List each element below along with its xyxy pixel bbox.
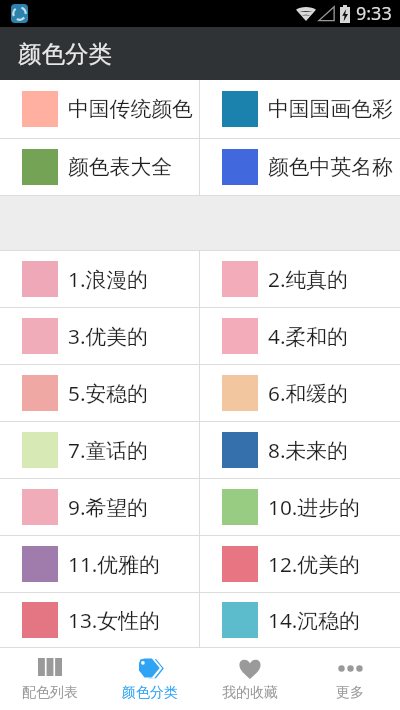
staticText: 4.柔和的 bbox=[268, 322, 348, 350]
staticText: 13.女性的 bbox=[68, 606, 160, 634]
button[interactable]: 颜色中英名称 bbox=[200, 139, 400, 195]
staticText: 颜色分类 bbox=[122, 684, 178, 702]
staticText: 6.和缓的 bbox=[268, 379, 348, 407]
staticText: 7.童话的 bbox=[68, 436, 148, 464]
staticText: 中国传统颜色 bbox=[68, 96, 193, 122]
button[interactable]: 中国传统颜色 bbox=[0, 80, 199, 138]
staticText: 3.优美的 bbox=[68, 322, 148, 350]
button[interactable]: 7.童话的 bbox=[0, 422, 199, 478]
staticText: 更多 bbox=[336, 684, 364, 702]
button[interactable]: 6.和缓的 bbox=[200, 365, 400, 421]
staticText: 颜色中英名称 bbox=[268, 154, 393, 180]
staticText: 颜色表大全 bbox=[68, 154, 172, 180]
staticText: 1.浪漫的 bbox=[68, 265, 148, 293]
button[interactable]: 颜色分类 bbox=[100, 648, 200, 710]
button[interactable]: 3.优美的 bbox=[0, 308, 199, 364]
button[interactable]: 我的收藏 bbox=[200, 648, 300, 710]
button[interactable]: 12.优美的 bbox=[200, 536, 400, 592]
button[interactable]: 11.优雅的 bbox=[0, 536, 199, 592]
staticText: 颜色分类 bbox=[18, 39, 112, 69]
button[interactable]: 8.未来的 bbox=[200, 422, 400, 478]
button[interactable]: 更多 bbox=[300, 648, 400, 710]
button[interactable]: 14.沉稳的 bbox=[200, 593, 400, 647]
staticText: 11.优雅的 bbox=[68, 550, 160, 578]
button[interactable]: 颜色表大全 bbox=[0, 139, 199, 195]
staticText: 9:33 bbox=[356, 1, 392, 26]
button[interactable]: 9.希望的 bbox=[0, 479, 199, 535]
staticText: 10.进步的 bbox=[268, 493, 360, 521]
staticText: 中国国画色彩 bbox=[268, 96, 393, 122]
button[interactable]: 5.安稳的 bbox=[0, 365, 199, 421]
staticText: 14.沉稳的 bbox=[268, 606, 360, 634]
staticText: 8.未来的 bbox=[268, 436, 348, 464]
button[interactable]: 中国国画色彩 bbox=[200, 80, 400, 138]
button[interactable]: 配色列表 bbox=[0, 648, 100, 710]
staticText: 2.纯真的 bbox=[268, 265, 348, 293]
staticText: 12.优美的 bbox=[268, 550, 360, 578]
button[interactable]: 13.女性的 bbox=[0, 593, 199, 647]
button[interactable]: 4.柔和的 bbox=[200, 308, 400, 364]
staticText: 我的收藏 bbox=[222, 684, 278, 702]
button[interactable]: 10.进步的 bbox=[200, 479, 400, 535]
button[interactable]: 1.浪漫的 bbox=[0, 251, 199, 307]
button[interactable]: 2.纯真的 bbox=[200, 251, 400, 307]
staticText: 5.安稳的 bbox=[68, 379, 148, 407]
staticText: 9.希望的 bbox=[68, 493, 148, 521]
staticText: 配色列表 bbox=[22, 684, 78, 702]
